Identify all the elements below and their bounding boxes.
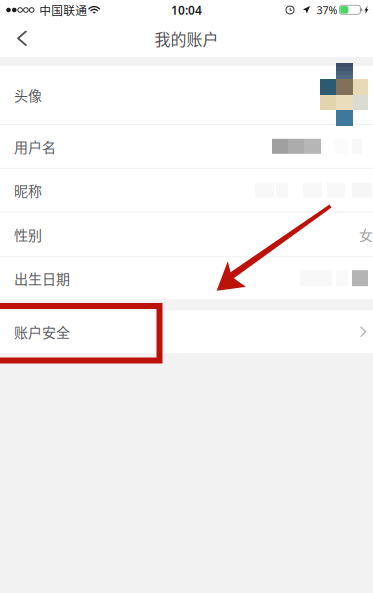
staticText: 用户名 bbox=[14, 136, 56, 156]
staticText: 账户安全 bbox=[14, 322, 70, 342]
button[interactable]: 性别 bbox=[0, 212, 373, 256]
staticText: 10:04 bbox=[171, 2, 202, 18]
staticText: 女 bbox=[359, 224, 373, 245]
staticText: 我的账户 bbox=[154, 27, 218, 50]
button[interactable]: Back bbox=[0, 20, 39, 56]
staticText: 昵称 bbox=[14, 180, 42, 200]
button[interactable]: 账户安全 bbox=[0, 310, 373, 353]
button[interactable]: 头像 bbox=[0, 66, 373, 124]
staticText: 头像 bbox=[14, 85, 42, 105]
staticText: 性别 bbox=[14, 224, 42, 245]
button[interactable]: 用户名 bbox=[0, 125, 373, 168]
staticText: 37% bbox=[316, 3, 337, 17]
staticText: 中国联通 bbox=[39, 1, 87, 18]
button[interactable]: 出生日期 bbox=[0, 257, 373, 299]
staticText: 出生日期 bbox=[14, 268, 70, 288]
button[interactable]: 昵称 bbox=[0, 169, 373, 212]
